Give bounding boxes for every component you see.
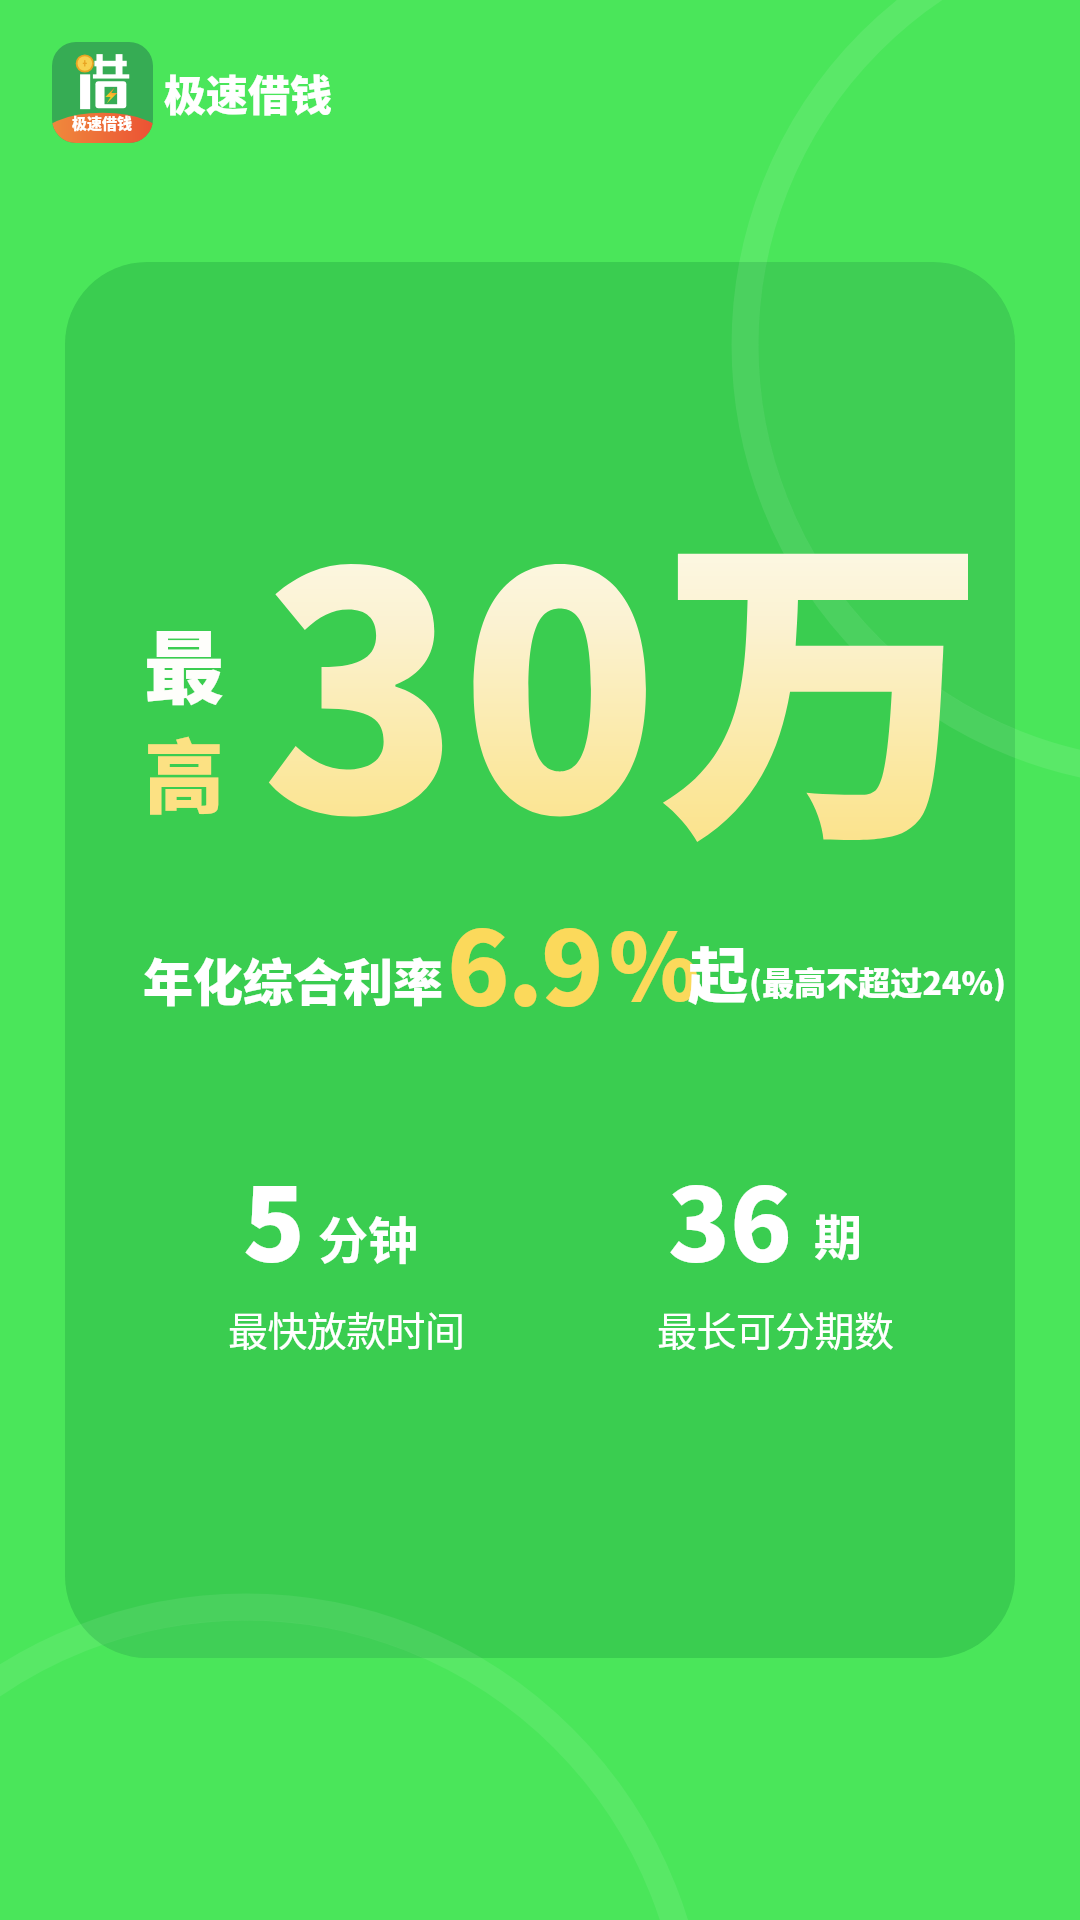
button[interactable]: 极速借钱	[52, 42, 333, 143]
staticText: 最	[144, 604, 224, 720]
staticText: 5	[243, 1144, 306, 1292]
staticText: 最快放款时间	[228, 1300, 465, 1358]
staticText: 期	[814, 1199, 863, 1269]
staticText: 年化综合利率	[143, 943, 443, 1015]
staticText: 36	[668, 1144, 793, 1292]
staticText: (最高不超过24%)	[749, 958, 1007, 1004]
staticText: 起	[688, 928, 748, 1015]
staticText: 30万	[261, 433, 987, 906]
button[interactable]: 最高30万额度详情	[65, 262, 1015, 1658]
staticText: 高	[144, 713, 224, 829]
staticText: %	[609, 894, 700, 1027]
staticText: 最长可分期数	[657, 1300, 894, 1358]
other: 极速借钱 app icon	[52, 42, 153, 143]
staticText: 分钟	[318, 1201, 418, 1273]
staticText: 极速借钱	[164, 62, 333, 123]
staticText: 6.9	[447, 887, 602, 1036]
staticText: 极速借钱	[72, 112, 133, 134]
